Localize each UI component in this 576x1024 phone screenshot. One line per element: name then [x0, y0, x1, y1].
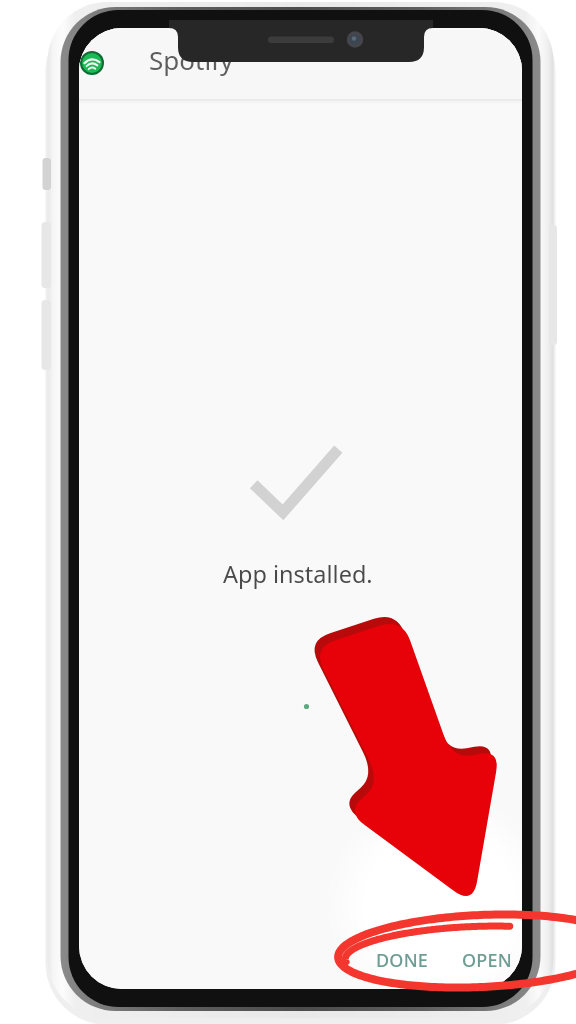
staticText: DONE: [376, 948, 429, 973]
staticText: Spotify: [149, 42, 234, 77]
button[interactable]: DONE: [362, 936, 443, 985]
button[interactable]: Spotify app icon: [79, 46, 109, 80]
staticText: App installed.: [223, 558, 373, 590]
button[interactable]: OPEN: [448, 936, 522, 985]
staticText: OPEN: [462, 948, 512, 973]
